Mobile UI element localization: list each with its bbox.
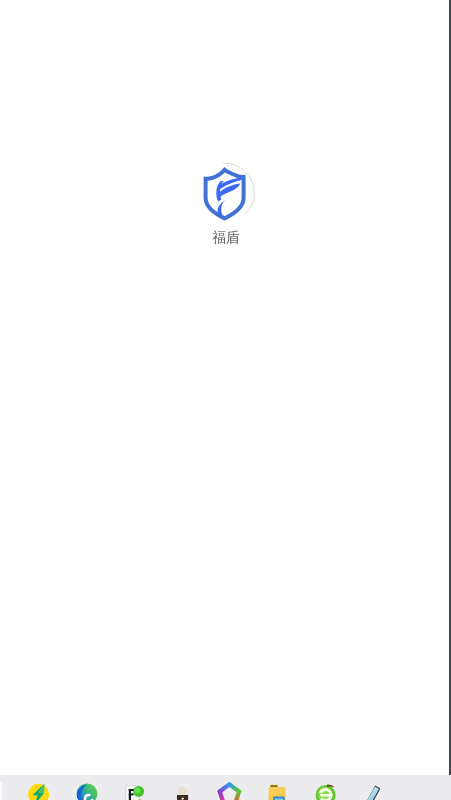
button[interactable]: Quick launch: [28, 783, 50, 800]
button[interactable]: Phone: [362, 783, 384, 800]
button[interactable]: 福盾: [196, 163, 256, 248]
button[interactable]: File Explorer: [266, 784, 288, 800]
button[interactable]: Game: [172, 784, 194, 800]
button[interactable]: Internet Explorer: [315, 783, 337, 800]
button[interactable]: Maps: [218, 782, 240, 800]
staticText: 福盾: [196, 229, 256, 247]
button[interactable]: Microsoft Edge: [76, 782, 98, 800]
button[interactable]: Editor: [124, 784, 146, 800]
